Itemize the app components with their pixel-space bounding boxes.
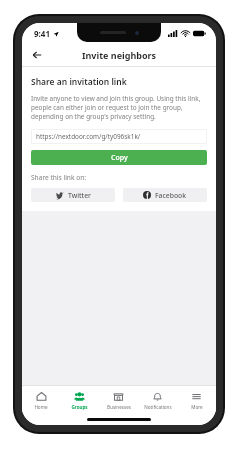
button[interactable]: Twitter [31,188,115,202]
button[interactable]: Copy [31,150,207,165]
staticText: https://nextdoor.com/g/ty096sk1k/ [36,132,141,141]
staticText: Groups [71,404,88,410]
button[interactable]: Back [28,46,46,64]
staticText: Home [34,404,48,410]
staticText: Businesses [107,404,131,410]
staticText: Share an invitation link [31,76,127,88]
staticText: Notifications [144,404,172,410]
button[interactable]: More [177,386,216,414]
staticText: More [191,404,203,410]
staticText: Invite neighbors [82,49,157,61]
button[interactable]: Notifications [138,386,177,414]
button[interactable]: https://nextdoor.com/g/ty096sk1k/ [31,129,207,144]
button[interactable]: Home [22,386,60,414]
button[interactable]: Groups [60,386,99,414]
staticText: 9:41 [34,28,50,39]
staticText: Share this link on: [31,173,86,182]
staticText: Facebook [155,191,187,200]
staticText: Copy [111,153,128,163]
staticText: Invite anyone to view and join this grou… [31,94,201,121]
button[interactable]: Businesses [99,386,138,414]
staticText: Twitter [68,191,91,200]
button[interactable]: Facebook [123,188,207,202]
